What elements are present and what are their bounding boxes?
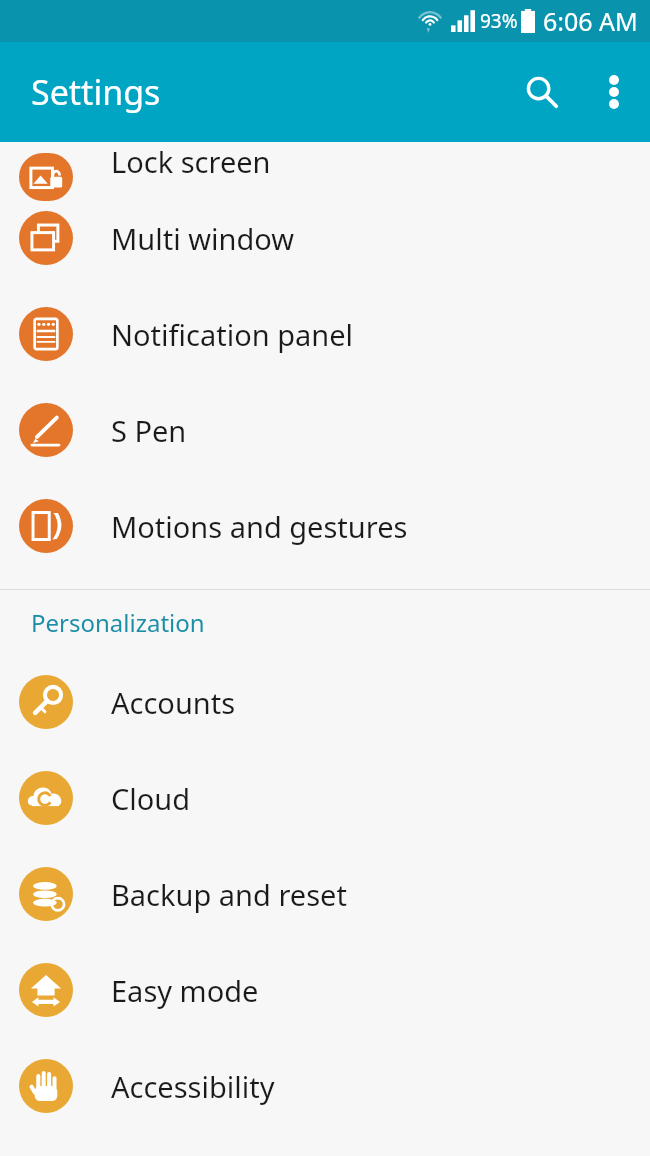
staticText: Cloud	[111, 779, 191, 818]
staticText: Notification panel	[111, 315, 354, 354]
button[interactable]: Multi window	[0, 190, 650, 286]
staticText: Backup and reset	[111, 875, 347, 914]
button[interactable]: More options	[578, 56, 650, 128]
staticText: 6:06 AM	[543, 4, 638, 38]
button[interactable]: Search	[506, 56, 578, 128]
staticText: Personalization	[31, 606, 205, 639]
button[interactable]: Lock screen	[0, 142, 650, 190]
staticText: Multi window	[111, 219, 294, 258]
button[interactable]: S Pen	[0, 382, 650, 478]
staticText: Lock screen	[111, 142, 271, 181]
staticText: 93%	[480, 8, 518, 34]
button[interactable]: Accounts	[0, 654, 650, 750]
staticText: Motions and gestures	[111, 507, 408, 546]
button[interactable]: Easy mode	[0, 942, 650, 1038]
button[interactable]: Notification panel	[0, 286, 650, 382]
button[interactable]: Accessibility	[0, 1038, 650, 1134]
staticText: Accessibility	[111, 1067, 275, 1106]
staticText: Easy mode	[111, 971, 259, 1010]
button[interactable]: Motions and gestures	[0, 478, 650, 574]
staticText: S Pen	[111, 411, 187, 450]
staticText: Settings	[31, 69, 161, 115]
staticText: Accounts	[111, 683, 236, 722]
button[interactable]: Backup and reset	[0, 846, 650, 942]
button[interactable]: Cloud	[0, 750, 650, 846]
